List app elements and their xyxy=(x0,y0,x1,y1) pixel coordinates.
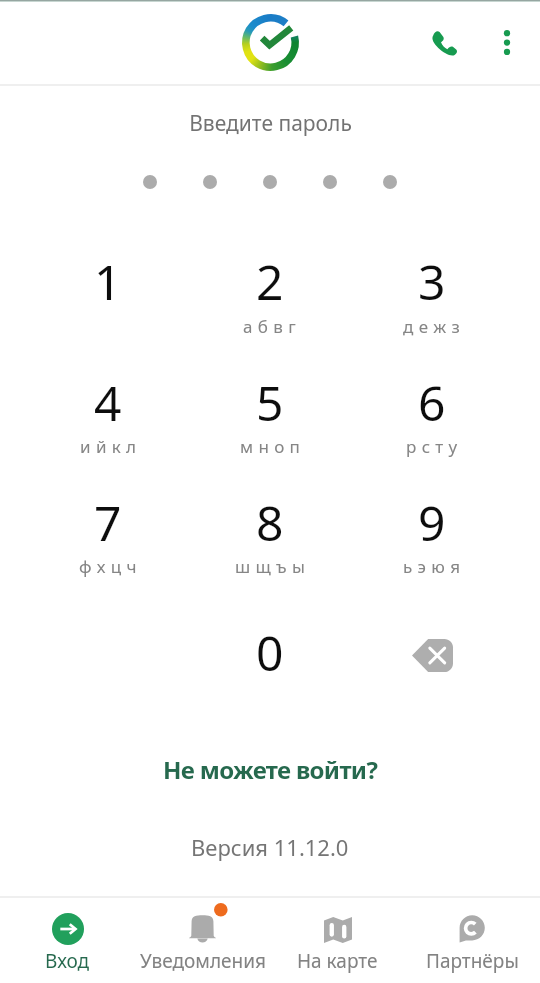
staticText: Не можете войти? xyxy=(163,753,378,786)
button[interactable]: 4 xyxy=(46,353,170,457)
button[interactable]: 6 xyxy=(370,353,494,457)
staticText: 0 xyxy=(256,620,284,685)
button[interactable]: More options xyxy=(485,20,529,64)
button[interactable]: 1 xyxy=(46,232,170,336)
staticText: ь э ю я xyxy=(403,555,461,578)
staticText: 7 xyxy=(94,490,122,555)
button[interactable]: 7 xyxy=(46,473,170,577)
button[interactable]: 5 xyxy=(208,353,332,457)
staticText: 6 xyxy=(418,370,446,435)
staticText: Версия 11.12.0 xyxy=(191,832,349,862)
button[interactable]: 3 xyxy=(370,232,494,336)
button[interactable]: Партнёры xyxy=(405,898,540,983)
staticText: р с т у xyxy=(406,435,458,458)
button[interactable]: Call xyxy=(419,18,468,67)
staticText: Вход xyxy=(45,948,90,974)
staticText: Партнёры xyxy=(426,948,519,974)
staticText: На карте xyxy=(297,948,378,974)
staticText: 1 xyxy=(94,249,122,314)
button[interactable]: Уведомления xyxy=(135,898,270,983)
staticText: Введите пароль xyxy=(189,109,352,138)
staticText: Уведомления xyxy=(140,948,266,974)
staticText: и й к л xyxy=(80,435,137,458)
staticText: д е ж з xyxy=(403,315,461,338)
button[interactable]: 2 xyxy=(208,232,332,336)
button[interactable]: Вход xyxy=(0,898,135,983)
button[interactable]: На карте xyxy=(270,898,405,983)
staticText: 8 xyxy=(256,490,284,555)
staticText: 4 xyxy=(94,370,122,435)
button[interactable]: 8 xyxy=(208,473,332,577)
staticText: м н о п xyxy=(240,435,301,458)
staticText: 3 xyxy=(418,249,446,314)
staticText: 9 xyxy=(418,490,446,555)
staticText: 2 xyxy=(256,249,284,314)
button[interactable]: 9 xyxy=(370,473,494,577)
button[interactable]: Не можете войти? xyxy=(120,745,420,793)
button[interactable]: 0 xyxy=(208,603,332,707)
button[interactable]: Delete xyxy=(370,603,494,707)
staticText: 5 xyxy=(256,370,284,435)
staticText: а б в г xyxy=(243,315,297,338)
staticText: ш щ ъ ы xyxy=(235,555,306,578)
staticText: ф х ц ч xyxy=(79,555,138,578)
